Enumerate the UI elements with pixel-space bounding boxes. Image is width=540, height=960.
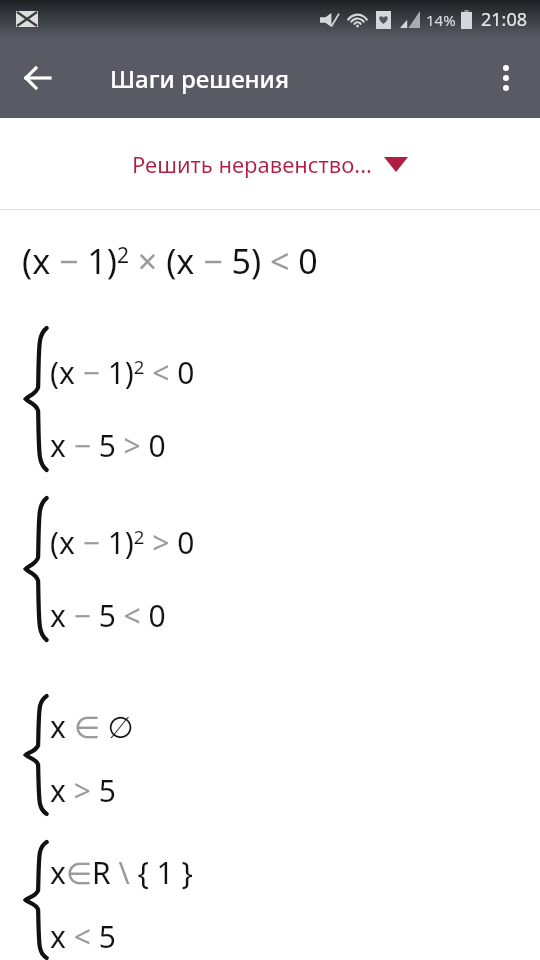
staticText: (x − 1)2 < 0 (50, 352, 195, 393)
staticText: x < 5 (50, 916, 116, 957)
staticText: Решить неравенство... (132, 149, 372, 179)
button[interactable]: More options (480, 52, 532, 104)
staticText: x∈R \ { 1 } (50, 852, 193, 893)
staticText: Шаги решения (110, 62, 289, 95)
staticText: x ∈ ∅ (50, 706, 134, 747)
staticText: x > 5 (50, 770, 116, 811)
staticText: x − 5 < 0 (50, 595, 166, 636)
staticText: x − 5 > 0 (50, 425, 166, 466)
button[interactable]: Back (10, 50, 66, 106)
staticText: 21:08 (481, 7, 528, 32)
staticText: 14% (426, 10, 456, 30)
button[interactable]: Решить неравенство... (0, 118, 540, 209)
staticText: (x − 1)2 > 0 (50, 522, 195, 563)
staticText: (x − 1)2 × (x − 5) < 0 (22, 238, 318, 284)
other: Messages (16, 11, 38, 27)
